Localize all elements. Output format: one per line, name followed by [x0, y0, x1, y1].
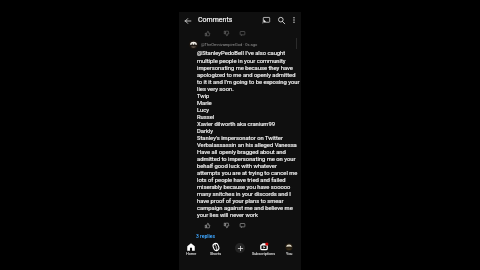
button[interactable]: Dislike comment	[222, 221, 231, 230]
staticText: 3 replies	[196, 233, 216, 239]
staticText: You	[286, 251, 293, 255]
button[interactable]: You	[277, 243, 301, 257]
staticText: Subscriptions	[252, 251, 276, 255]
staticText: Shorts	[210, 251, 222, 255]
button[interactable]: Like comment	[203, 221, 212, 230]
button[interactable]: More options	[289, 15, 299, 25]
button[interactable]: Like	[203, 29, 212, 38]
button[interactable]: Shorts	[204, 243, 228, 257]
staticText: @TheOmnivampireGod · 0s ago	[201, 42, 258, 47]
button[interactable]: Cast	[260, 14, 272, 26]
button[interactable]: Dislike	[222, 29, 231, 38]
button[interactable]: Home	[179, 243, 203, 257]
button[interactable]: Reply	[238, 29, 247, 38]
staticText: Comments	[198, 16, 233, 24]
button[interactable]: 3 replies	[193, 232, 219, 240]
button[interactable]: Reply to comment	[238, 221, 247, 230]
staticText: Home	[186, 251, 197, 255]
button[interactable]: Create	[228, 243, 252, 257]
staticText: @StanleyPedoBell I've also caught multip…	[197, 50, 300, 218]
button[interactable]: Search	[275, 14, 287, 26]
button[interactable]: Back	[182, 15, 193, 26]
button[interactable]: Subscriptions	[252, 243, 276, 257]
